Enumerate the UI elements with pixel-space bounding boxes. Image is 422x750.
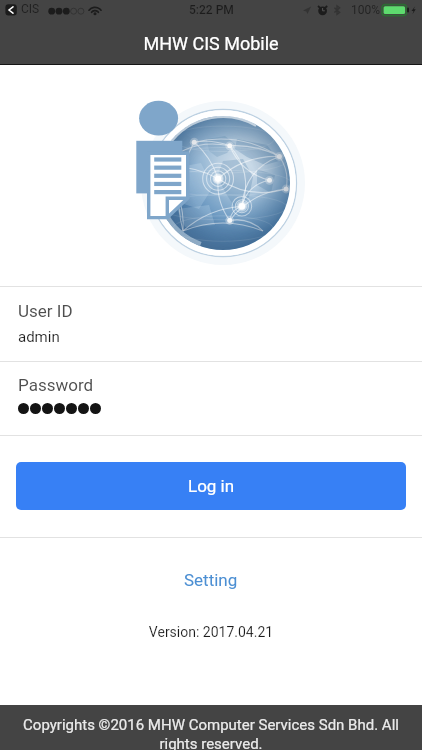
staticText: Version: 2017.04.21 bbox=[0, 624, 422, 640]
staticText: Setting bbox=[184, 570, 238, 590]
button[interactable]: Setting bbox=[176, 564, 246, 596]
staticText: 5:22 PM bbox=[189, 3, 234, 17]
staticText: Log in bbox=[188, 476, 235, 496]
button[interactable]: Password bbox=[0, 362, 422, 435]
staticText: 100% bbox=[351, 3, 381, 17]
button[interactable]: Log in bbox=[16, 462, 406, 510]
staticText: MHW CIS Mobile bbox=[0, 33, 422, 54]
staticText: admin bbox=[18, 328, 60, 346]
staticText: CIS bbox=[21, 2, 40, 16]
staticText: Password bbox=[18, 375, 94, 395]
staticText: Copyrights ©2016 MHW Computer Services S… bbox=[16, 716, 406, 750]
staticText: User ID bbox=[18, 301, 73, 321]
button[interactable]: User ID bbox=[0, 287, 422, 361]
